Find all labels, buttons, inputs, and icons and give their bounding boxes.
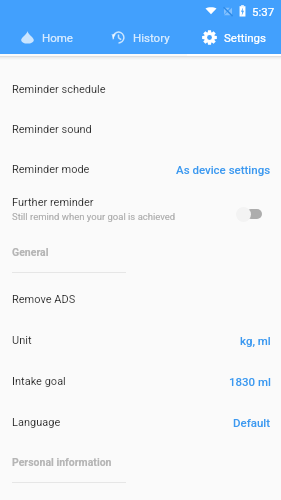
staticText: 1830 ml — [229, 375, 271, 388]
staticText: Further reminder — [12, 196, 94, 209]
staticText: Reminder sound — [12, 123, 92, 136]
staticText: Unit — [12, 334, 32, 347]
staticText: kg, ml — [240, 334, 271, 347]
button[interactable]: Toggle Further reminder — [235, 203, 269, 225]
button[interactable]: Intake goal — [0, 361, 281, 402]
staticText: History — [133, 31, 170, 44]
staticText: General — [12, 246, 49, 258]
staticText: Reminder mode — [12, 163, 90, 176]
button[interactable]: Reminder mode — [0, 149, 281, 189]
staticText: Reminder schedule — [12, 83, 106, 96]
staticText: Intake goal — [12, 375, 66, 388]
other: Settings — [202, 30, 217, 45]
button[interactable]: History — [93, 22, 187, 53]
button[interactable]: Reminder schedule — [0, 69, 281, 109]
staticText: Remove ADS — [12, 293, 76, 306]
staticText: Settings — [224, 31, 266, 44]
staticText: Personal information — [12, 456, 112, 468]
button[interactable]: Further reminder — [0, 189, 281, 229]
button[interactable]: Unit — [0, 320, 281, 361]
staticText: Home — [42, 31, 73, 44]
other: Home — [20, 30, 35, 45]
button[interactable]: Home — [0, 22, 93, 53]
other: History — [111, 30, 126, 45]
button[interactable]: Language — [0, 402, 281, 443]
staticText: 5:37 — [252, 5, 275, 18]
staticText: Language — [12, 416, 61, 429]
staticText: Still remind when your goal is achieved — [12, 211, 176, 222]
staticText: As device settings — [176, 163, 271, 176]
button[interactable]: Remove ADS — [0, 279, 281, 320]
button[interactable]: Reminder sound — [0, 109, 281, 149]
button[interactable]: Settings — [187, 22, 281, 53]
staticText: Default — [233, 416, 271, 429]
